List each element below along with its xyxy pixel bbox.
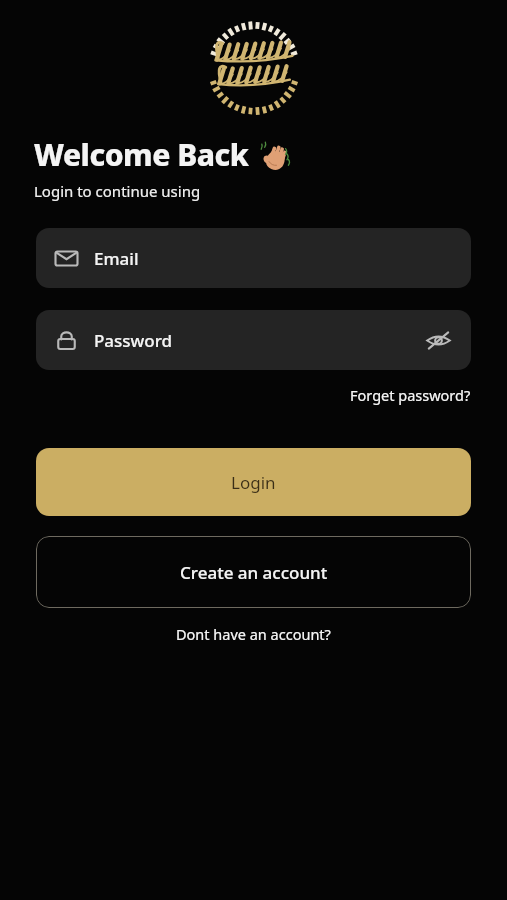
staticText: Email	[94, 247, 139, 270]
staticText: Welcome Back	[34, 134, 249, 175]
other: Waving hand	[258, 139, 290, 171]
staticText: Password	[94, 329, 173, 352]
staticText: Login	[231, 471, 276, 494]
staticText: Forget password?	[350, 385, 471, 405]
staticText: Login to continue using	[34, 181, 201, 201]
other: Melanated Audacity logo	[202, 16, 306, 120]
button[interactable]: Dont have an account?	[172, 621, 335, 647]
button[interactable]: Show password	[421, 323, 455, 357]
button[interactable]: Password	[36, 310, 471, 370]
button[interactable]: Login	[36, 448, 471, 516]
button[interactable]: Create an account	[36, 536, 471, 608]
staticText: Create an account	[180, 561, 328, 584]
button[interactable]: Forget password?	[348, 382, 473, 408]
staticText: Dont have an account?	[176, 624, 331, 644]
button[interactable]: Email	[36, 228, 471, 288]
